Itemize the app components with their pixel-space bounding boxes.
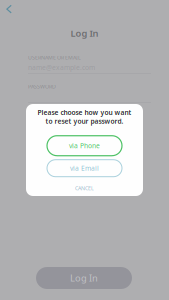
staticText: to reset your password. <box>45 117 123 126</box>
button[interactable]: Log In <box>36 267 132 289</box>
staticText: via Email <box>70 164 99 173</box>
button[interactable]: via Email <box>47 160 122 177</box>
button[interactable]: Back <box>0 0 18 18</box>
button[interactable]: via Phone <box>47 136 122 156</box>
staticText: USERNAME OR EMAIL <box>28 54 81 61</box>
staticText: PASSWORD <box>28 83 56 90</box>
staticText: Please choose how you want <box>37 108 131 117</box>
staticText: name@example.com <box>28 63 95 72</box>
staticText: Log In <box>70 272 98 284</box>
staticText: via Phone <box>69 141 100 150</box>
button[interactable]: CANCEL <box>26 184 143 193</box>
staticText: CANCEL <box>75 185 94 192</box>
staticText: Log In <box>70 27 98 39</box>
